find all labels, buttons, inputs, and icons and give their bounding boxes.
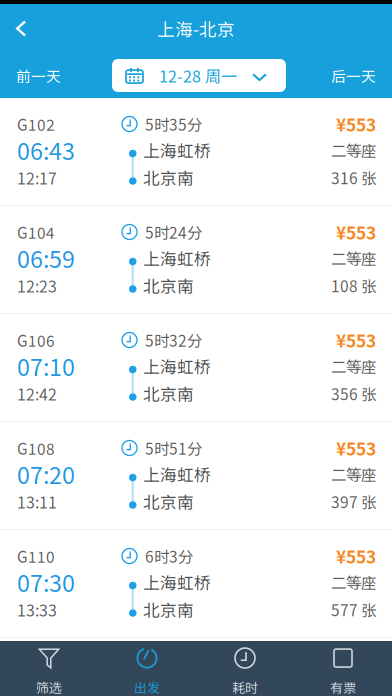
staticText: 108 张 (331, 274, 376, 297)
staticText: 北京南 (143, 489, 194, 513)
staticText: 二等座 (331, 571, 376, 593)
staticText: 13:33 (17, 598, 57, 621)
staticText: 5时32分 (145, 329, 202, 351)
staticText: 上海虹桥 (143, 570, 211, 594)
staticText: G108 (17, 437, 55, 459)
staticText: 5时24分 (145, 221, 202, 243)
staticText: 06:43 (17, 133, 75, 167)
staticText: 397 张 (331, 490, 376, 513)
staticText: ¥553 (336, 111, 376, 137)
staticText: 12:23 (17, 274, 57, 297)
staticText: ¥553 (336, 327, 376, 353)
staticText: 有票 (330, 677, 356, 696)
staticText: ¥553 (336, 543, 376, 569)
staticText: 北京南 (143, 273, 194, 297)
staticText: 上海虹桥 (143, 462, 211, 486)
button[interactable]: 12-28 周一 (106, 59, 286, 92)
staticText: 577 张 (331, 598, 376, 621)
staticText: 二等座 (331, 247, 376, 269)
staticText: 上海-北京 (157, 16, 235, 41)
staticText: G106 (17, 329, 55, 351)
staticText: 07:30 (17, 565, 75, 599)
button[interactable]: 有票 (294, 641, 392, 696)
staticText: 5时51分 (145, 437, 202, 459)
button[interactable]: Back (0, 6, 42, 51)
button[interactable]: 耗时 (196, 641, 294, 696)
staticText: 二等座 (331, 463, 376, 485)
staticText: 后一天 (331, 65, 376, 86)
button[interactable]: G104 (0, 206, 392, 314)
staticText: 13:11 (17, 490, 57, 513)
staticText: 二等座 (331, 355, 376, 377)
staticText: ¥553 (336, 435, 376, 461)
staticText: G102 (17, 113, 55, 135)
staticText: 316 张 (331, 166, 376, 189)
staticText: 07:10 (17, 349, 75, 383)
button[interactable]: G108 (0, 422, 392, 530)
button[interactable]: G102 (0, 98, 392, 206)
staticText: G104 (17, 221, 55, 243)
staticText: 上海虹桥 (143, 354, 211, 378)
staticText: 北京南 (143, 381, 194, 405)
staticText: G110 (17, 545, 55, 567)
staticText: 耗时 (232, 677, 258, 696)
staticText: 二等座 (331, 139, 376, 161)
button[interactable]: 前一天 (0, 53, 93, 98)
staticText: 5时35分 (145, 113, 202, 135)
staticText: 上海虹桥 (143, 246, 211, 270)
staticText: 出发 (134, 677, 160, 696)
staticText: 6时3分 (145, 545, 193, 567)
button[interactable]: G106 (0, 314, 392, 422)
staticText: 北京南 (143, 597, 194, 621)
button[interactable]: 后一天 (299, 53, 392, 98)
staticText: 12:42 (17, 382, 57, 405)
staticText: ¥553 (336, 219, 376, 245)
staticText: 356 张 (331, 382, 376, 405)
button[interactable]: G110 (0, 530, 392, 638)
staticText: 07:20 (17, 457, 75, 491)
staticText: 12-28 周一 (159, 64, 237, 87)
staticText: 06:59 (17, 241, 75, 275)
staticText: 前一天 (16, 65, 61, 86)
staticText: 北京南 (143, 165, 194, 189)
staticText: 12:17 (17, 166, 57, 189)
staticText: 上海虹桥 (143, 138, 211, 162)
staticText: 筛选 (36, 677, 62, 696)
button[interactable]: 筛选 (0, 641, 98, 696)
button[interactable]: 出发 (98, 641, 196, 696)
